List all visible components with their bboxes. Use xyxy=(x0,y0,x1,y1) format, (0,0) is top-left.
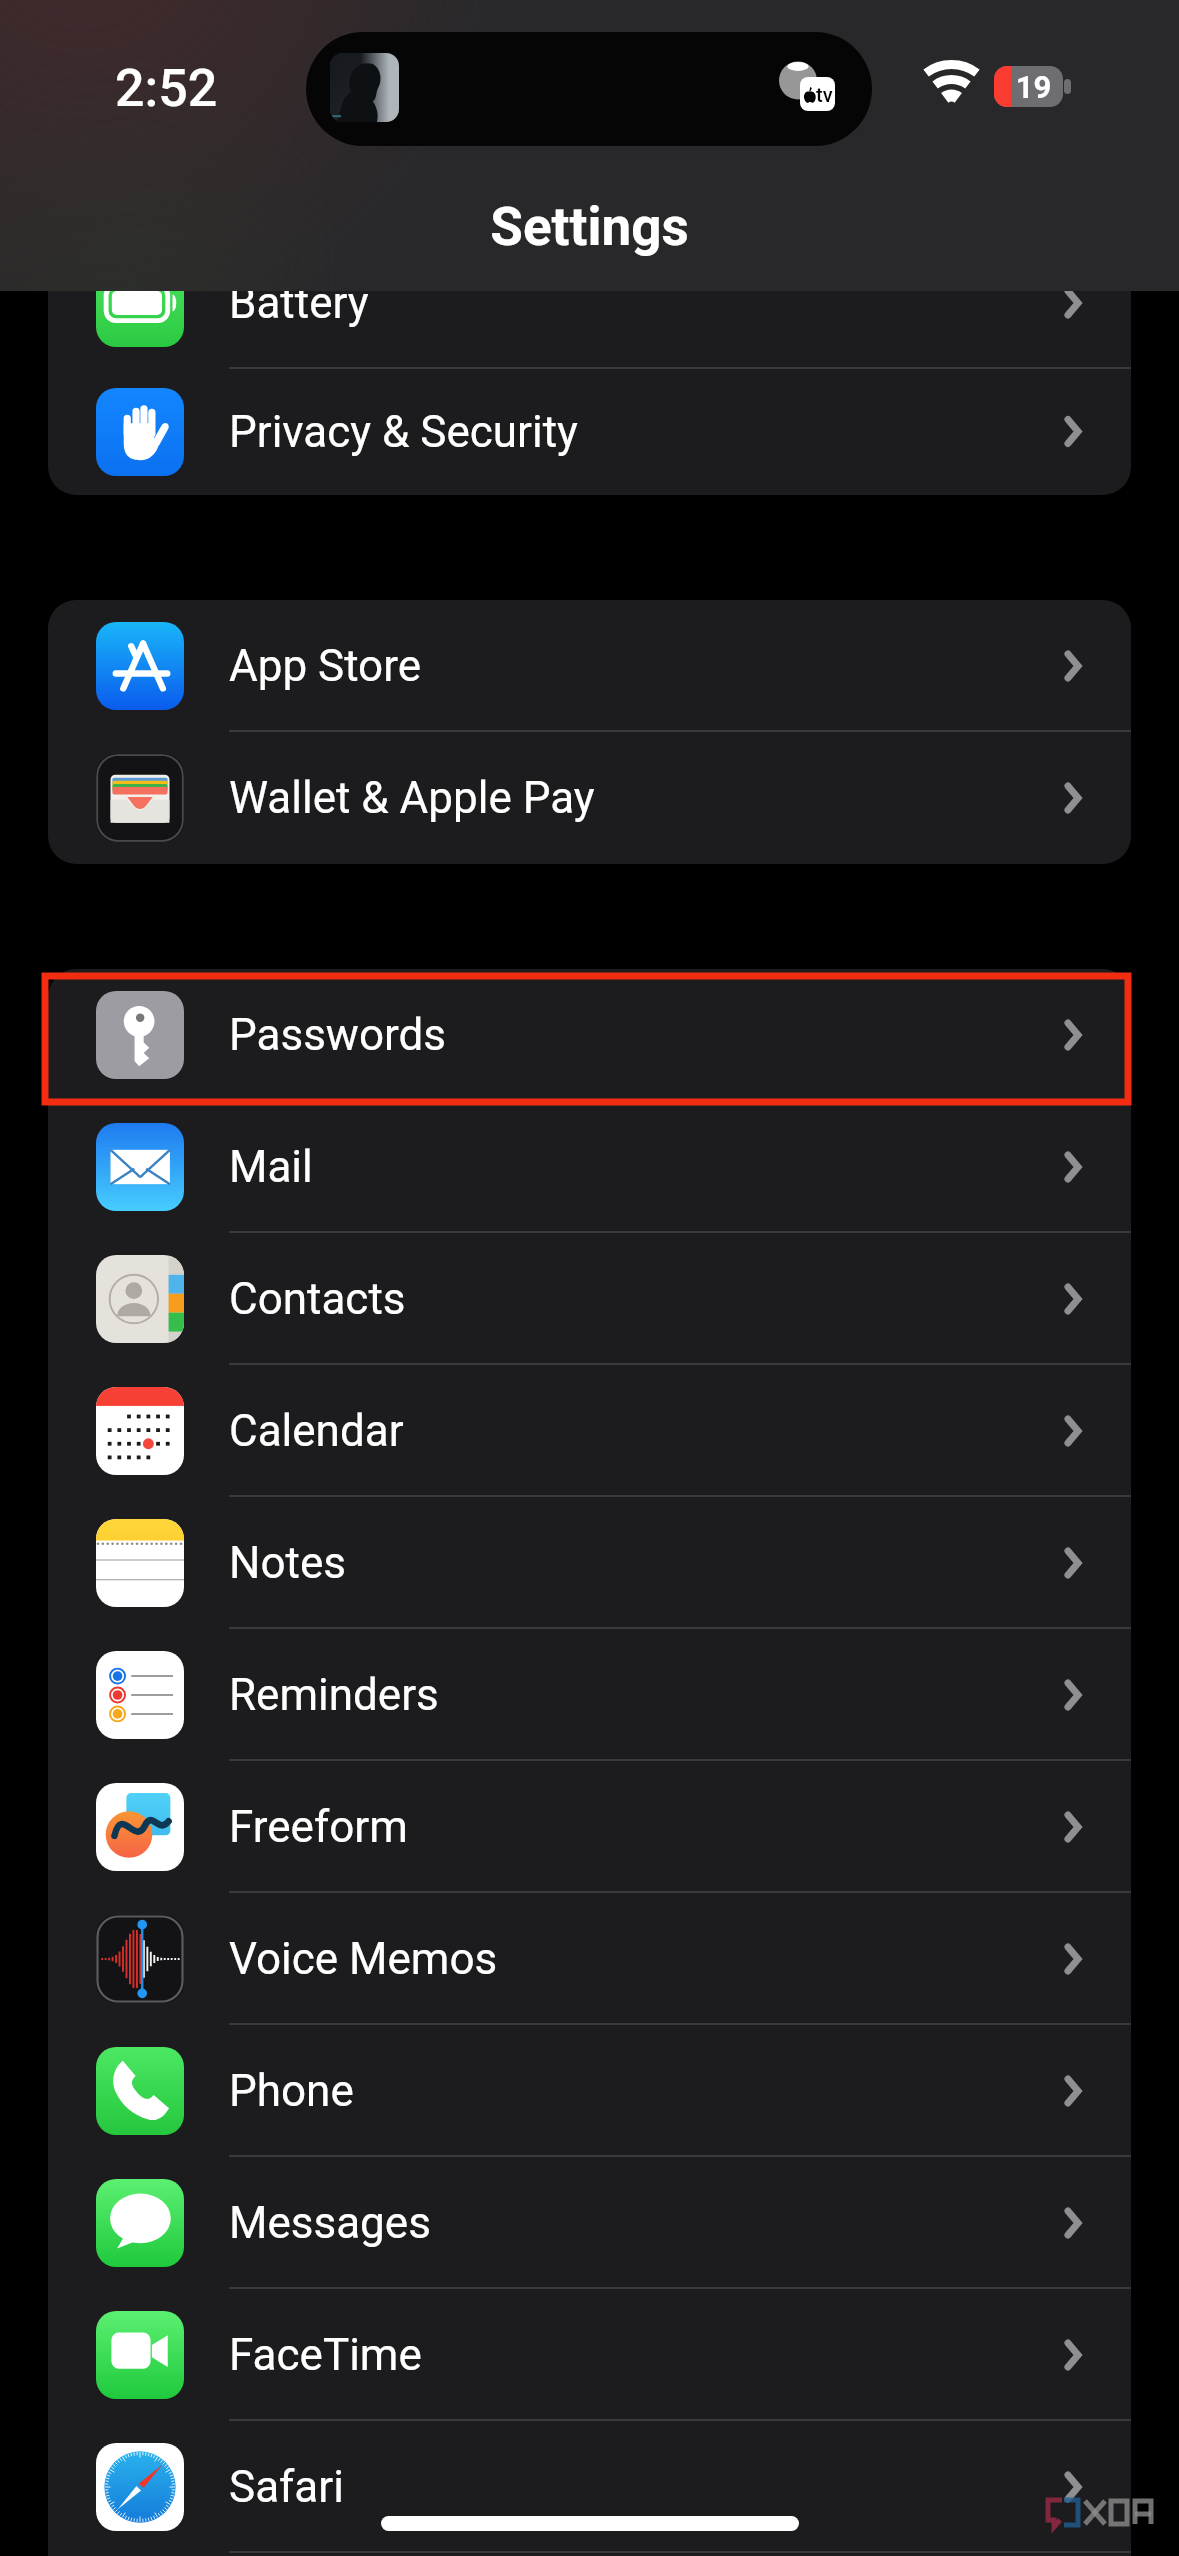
staticText: Freeform xyxy=(229,1801,408,1853)
staticText: Notes xyxy=(229,1537,346,1589)
button[interactable]: Safari xyxy=(48,2421,1131,2553)
button[interactable]: Wallet & Apple Pay xyxy=(48,732,1131,864)
staticText: Voice Memos xyxy=(229,1933,498,1985)
button[interactable]: FaceTime xyxy=(48,2289,1131,2421)
staticText: 19 xyxy=(999,69,1063,105)
other: Wi-Fi connected xyxy=(928,66,975,106)
staticText: Privacy & Security xyxy=(229,406,578,458)
button[interactable]: Messages xyxy=(48,2157,1131,2289)
staticText: Phone xyxy=(229,2065,354,2117)
button[interactable]: Passwords xyxy=(48,969,1131,1101)
staticText: Passwords xyxy=(229,1009,447,1061)
staticText: Wallet & Apple Pay xyxy=(229,772,595,824)
button[interactable]: Privacy & Security xyxy=(48,369,1131,494)
staticText: Safari xyxy=(229,2461,344,2513)
staticText: Messages xyxy=(229,2197,431,2249)
staticText: Calendar xyxy=(229,1405,404,1457)
staticText: tv xyxy=(816,83,833,106)
button[interactable]: Calendar xyxy=(48,1365,1131,1497)
button[interactable]: Battery xyxy=(48,237,1131,369)
staticText: Reminders xyxy=(229,1669,439,1721)
button[interactable]: Contacts xyxy=(48,1233,1131,1365)
button[interactable]: App Store xyxy=(48,600,1131,732)
staticText: Mail xyxy=(229,1141,313,1193)
button[interactable]: Voice Memos xyxy=(48,1893,1131,2025)
staticText: FaceTime xyxy=(229,2329,422,2381)
button[interactable]: Notes xyxy=(48,1497,1131,1629)
staticText: 2:52 xyxy=(115,58,218,119)
staticText: Settings xyxy=(0,196,1179,258)
button[interactable]: Freeform xyxy=(48,1761,1131,1893)
staticText: Contacts xyxy=(229,1273,406,1325)
staticText: App Store xyxy=(229,640,422,692)
button[interactable]: Mail xyxy=(48,1101,1131,1233)
button[interactable]: Now Playing on Apple TV xyxy=(306,32,872,146)
button[interactable]: Reminders xyxy=(48,1629,1131,1761)
other: Battery 19 percent, low power mode xyxy=(994,66,1063,107)
button[interactable]: Phone xyxy=(48,2025,1131,2157)
staticText: Battery xyxy=(229,277,369,329)
